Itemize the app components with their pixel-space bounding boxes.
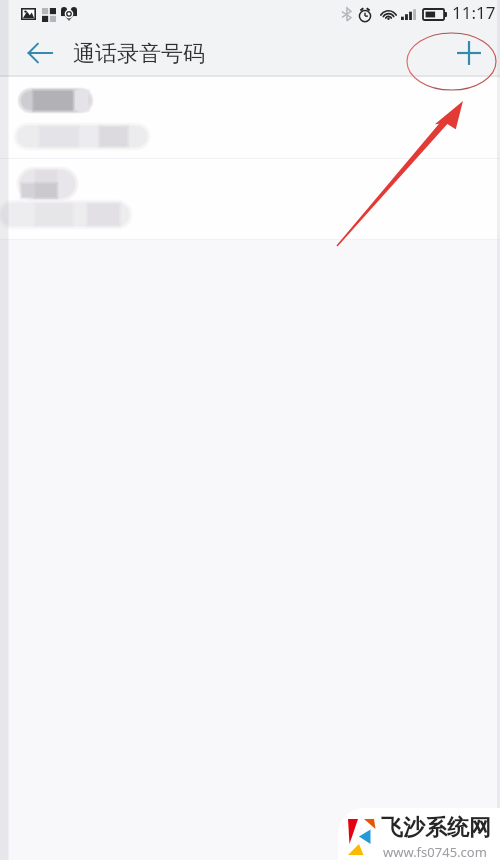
staticText: 11:17 — [452, 1, 496, 24]
staticText: www.fs0745.com — [383, 843, 487, 860]
button[interactable]: Add — [447, 31, 491, 75]
button[interactable] — [0, 159, 500, 239]
staticText: 通话录音号码 — [73, 40, 205, 68]
staticText: 飞沙系统网 — [381, 814, 491, 842]
button[interactable]: Back — [18, 31, 62, 75]
button[interactable] — [0, 77, 500, 158]
